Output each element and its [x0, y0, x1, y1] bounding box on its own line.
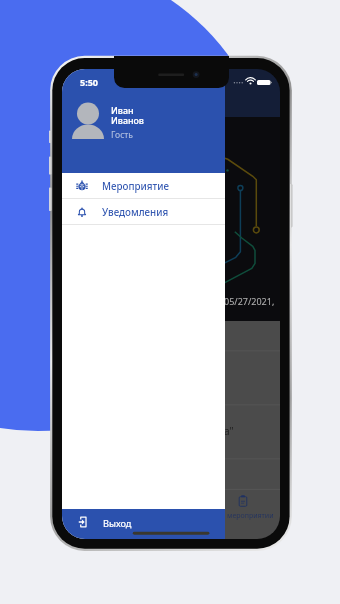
staticText: Иван	[111, 104, 134, 116]
staticText: Мероприятие	[102, 180, 169, 193]
button[interactable]: Мероприятие	[62, 173, 225, 198]
staticText: Уведомления	[102, 206, 169, 219]
staticText: a"	[224, 424, 234, 438]
staticText: Иванов	[111, 114, 144, 126]
button[interactable]: Уведомления	[62, 199, 225, 224]
staticText: 5:50	[80, 76, 98, 88]
staticText: Гость	[111, 129, 134, 141]
staticText: 05/27/2021,	[224, 295, 275, 307]
staticText: Выход	[103, 517, 132, 530]
button[interactable]: Выход	[62, 509, 225, 539]
staticText: мероприятии	[227, 511, 274, 521]
